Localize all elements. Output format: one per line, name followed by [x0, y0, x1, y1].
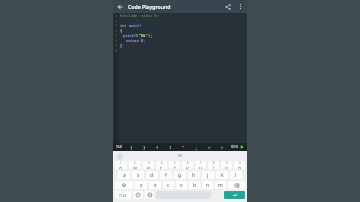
button[interactable]: 9	[221, 161, 232, 169]
button[interactable]: 1	[115, 161, 127, 169]
staticText: 5	[115, 33, 118, 38]
button[interactable]: a	[118, 171, 130, 179]
staticText: p	[238, 165, 242, 169]
button[interactable]: k	[216, 171, 228, 179]
staticText: 2	[115, 18, 118, 23]
button[interactable]: Hi	[178, 153, 183, 159]
staticText: main()	[129, 23, 142, 28]
button[interactable]: j	[202, 171, 214, 179]
staticText: 1	[115, 13, 118, 18]
staticText: {	[130, 145, 133, 150]
button[interactable]: Change language	[145, 191, 154, 199]
staticText: s	[137, 172, 140, 179]
button[interactable]: 0	[234, 161, 245, 169]
staticText: "Hi"	[139, 33, 148, 38]
staticText: );	[148, 33, 153, 38]
button[interactable]: x	[149, 181, 161, 189]
button[interactable]: (	[151, 143, 164, 151]
button[interactable]: 7	[195, 161, 206, 169]
button[interactable]: 8	[208, 161, 219, 169]
button[interactable]: 5	[169, 161, 180, 169]
staticText: 7	[115, 43, 118, 48]
staticText: "	[182, 145, 185, 150]
button[interactable]: Emoji	[133, 191, 143, 199]
staticText: #include <stdio.h>	[120, 13, 159, 18]
staticText: r	[160, 165, 163, 169]
button[interactable]: 3	[143, 161, 154, 169]
button[interactable]: Back	[113, 0, 126, 13]
staticText: y	[186, 165, 189, 169]
staticText: >	[221, 145, 224, 150]
staticText: 6	[187, 161, 189, 165]
button[interactable]: f	[160, 171, 172, 179]
staticText: printf	[123, 33, 136, 38]
button[interactable]: d	[146, 171, 158, 179]
button[interactable]: Expand suggestions	[116, 153, 122, 159]
staticText: }	[120, 43, 123, 48]
staticText: t	[174, 165, 176, 169]
staticText: n	[206, 182, 210, 189]
staticText: ?123	[119, 193, 127, 198]
button[interactable]: v	[176, 181, 187, 189]
staticText: a	[123, 172, 126, 179]
staticText: h	[192, 172, 196, 179]
staticText: ;	[195, 145, 198, 150]
button[interactable]: 4	[156, 161, 167, 169]
staticText: )	[169, 145, 172, 150]
button[interactable]: TAB	[114, 145, 124, 149]
button[interactable]: z	[135, 181, 147, 189]
button[interactable]: 6	[182, 161, 193, 169]
staticText: m	[218, 182, 223, 189]
button[interactable]: <	[203, 143, 216, 151]
staticText: (	[136, 33, 139, 38]
button[interactable]: More options	[234, 0, 247, 13]
staticText: <	[208, 145, 211, 150]
button[interactable]: 2	[129, 161, 141, 169]
button[interactable]: b	[189, 181, 200, 189]
staticText: o	[225, 165, 229, 169]
button[interactable]: "	[177, 143, 190, 151]
staticText: RUN	[231, 145, 239, 149]
button[interactable]: m	[215, 181, 226, 189]
staticText: u	[199, 165, 203, 169]
staticText: q	[119, 165, 123, 169]
button[interactable]: ?123	[115, 191, 131, 199]
staticText: b	[193, 182, 197, 189]
staticText: l	[235, 172, 237, 179]
button[interactable]: g	[174, 171, 186, 179]
staticText: 5	[174, 161, 176, 165]
button[interactable]: l	[230, 171, 242, 179]
button[interactable]: Backspace	[228, 181, 245, 189]
button[interactable]: RUN	[229, 145, 246, 149]
button[interactable]: }	[138, 143, 151, 151]
staticText: e	[147, 165, 150, 169]
staticText: z	[140, 182, 143, 189]
staticText: int	[120, 23, 129, 28]
button[interactable]: .	[213, 191, 222, 199]
button[interactable]: s	[132, 171, 144, 179]
staticText: Code Playground	[128, 3, 221, 10]
staticText: v	[180, 182, 183, 189]
button[interactable]: {	[124, 143, 138, 151]
button[interactable]: Enter	[224, 191, 245, 199]
staticText: j	[207, 172, 209, 179]
button[interactable]: )	[164, 143, 177, 151]
button[interactable]: c	[163, 181, 174, 189]
button[interactable]: Share	[221, 0, 234, 13]
staticText: 2	[134, 161, 136, 165]
staticText: {	[120, 28, 123, 33]
button[interactable]: n	[202, 181, 213, 189]
button[interactable]: ;	[190, 143, 203, 151]
button[interactable]: >	[216, 143, 229, 151]
staticText: d	[150, 172, 154, 179]
button[interactable]: h	[188, 171, 200, 179]
staticText: .	[217, 193, 219, 198]
staticText: 0	[239, 161, 241, 165]
button[interactable]: Shift	[115, 181, 133, 189]
staticText: TAB	[116, 145, 122, 149]
staticText: x	[154, 182, 157, 189]
staticText: f	[165, 172, 167, 179]
staticText: w	[133, 165, 137, 169]
staticText: (	[156, 145, 159, 150]
